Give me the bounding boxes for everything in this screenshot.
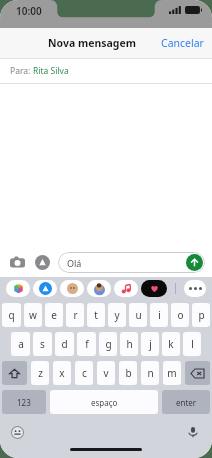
button[interactable]: Backspace — [185, 361, 210, 385]
button[interactable]: h — [120, 332, 138, 356]
staticText: o — [177, 308, 184, 322]
staticText: j — [149, 337, 152, 351]
button[interactable]: u — [129, 303, 147, 327]
button[interactable]: y — [108, 303, 126, 327]
button[interactable]: Photos — [6, 280, 30, 297]
staticText: Para: — [10, 65, 33, 77]
button[interactable]: Music — [114, 280, 138, 297]
button[interactable]: s — [33, 332, 52, 356]
button[interactable]: v — [97, 361, 115, 385]
staticText: h — [126, 337, 133, 351]
button[interactable]: f — [77, 332, 96, 356]
staticText: p — [198, 308, 205, 322]
staticText: q — [8, 308, 15, 322]
button[interactable]: Olá — [58, 252, 205, 273]
button[interactable]: Camera — [7, 252, 27, 272]
staticText: v — [103, 366, 109, 380]
staticText: n — [147, 366, 154, 380]
staticText: b — [125, 366, 132, 380]
staticText: t — [94, 308, 98, 322]
staticText: g — [105, 337, 112, 351]
button[interactable]: b — [119, 361, 137, 385]
staticText: x — [59, 366, 65, 380]
staticText: r — [73, 308, 78, 322]
staticText: z — [38, 366, 43, 380]
button[interactable]: c — [75, 361, 93, 385]
staticText: s — [40, 337, 45, 351]
staticText: enter — [176, 397, 197, 408]
staticText: y — [114, 308, 120, 322]
button[interactable]: g — [99, 332, 117, 356]
staticText: 123 — [17, 397, 31, 408]
button[interactable]: w — [24, 303, 42, 327]
staticText: espaço — [91, 397, 118, 408]
staticText: i — [158, 308, 161, 322]
button[interactable]: Memoji — [60, 280, 84, 297]
button[interactable]: d — [55, 332, 74, 356]
staticText: f — [85, 337, 89, 351]
button[interactable]: App Store — [32, 252, 52, 272]
button[interactable]: Digital Touch — [141, 280, 167, 297]
staticText: d — [61, 337, 68, 351]
staticText: w — [29, 308, 37, 322]
staticText: 10:00 — [16, 4, 42, 18]
button[interactable]: App Store — [33, 280, 57, 297]
button[interactable]: j — [141, 332, 159, 356]
staticText: Rita Silva — [33, 65, 69, 77]
staticText: Nova mensagem — [48, 36, 136, 50]
button[interactable]: m — [163, 361, 181, 385]
button[interactable]: x — [53, 361, 71, 385]
button[interactable]: 123 — [2, 390, 46, 414]
staticText: u — [135, 308, 142, 322]
staticText: c — [82, 366, 87, 380]
button[interactable]: z — [31, 361, 49, 385]
button[interactable]: p — [192, 303, 210, 327]
button[interactable]: More apps — [184, 280, 206, 297]
button[interactable]: e — [45, 303, 63, 327]
staticText: a — [18, 337, 24, 351]
button[interactable]: r — [66, 303, 84, 327]
button[interactable]: Shift — [2, 361, 27, 385]
staticText: Cancelar — [161, 36, 204, 50]
button[interactable]: k — [162, 332, 180, 356]
button[interactable]: Para: — [0, 59, 212, 83]
button[interactable]: i — [150, 303, 168, 327]
button[interactable]: n — [141, 361, 159, 385]
button[interactable]: t — [87, 303, 105, 327]
staticText: Olá — [67, 257, 82, 269]
staticText: e — [51, 308, 57, 322]
button[interactable]: Memoji person — [87, 280, 111, 297]
button[interactable]: o — [171, 303, 189, 327]
button[interactable]: espaço — [50, 390, 158, 414]
staticText: k — [168, 337, 174, 351]
button[interactable]: a — [11, 332, 30, 356]
button[interactable]: enter — [162, 390, 210, 414]
button[interactable]: l — [183, 332, 201, 356]
button[interactable]: Send — [186, 254, 203, 271]
button[interactable]: Dictation — [184, 423, 202, 441]
staticText: m — [167, 366, 177, 380]
button[interactable]: Emoji — [8, 423, 26, 441]
staticText: l — [191, 337, 194, 351]
button[interactable]: q — [2, 303, 21, 327]
button[interactable]: Cancelar — [153, 30, 212, 56]
